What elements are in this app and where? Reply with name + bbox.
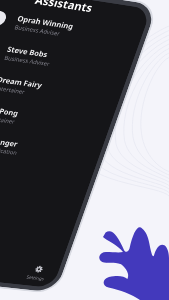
staticText: Settings xyxy=(26,274,45,281)
staticText: Business Adviser xyxy=(14,23,61,37)
staticText: Oprah Winning xyxy=(16,13,76,31)
button[interactable]: Settings xyxy=(21,262,53,283)
button[interactable]: Dream Fairy xyxy=(0,60,125,114)
staticText: Business Adviser xyxy=(4,53,51,67)
button[interactable]: Steve Bobs xyxy=(0,30,135,84)
staticText: Assistants xyxy=(33,0,95,15)
button[interactable]: Mr Pong xyxy=(0,91,115,143)
staticText: Entertainer xyxy=(0,114,16,125)
button[interactable]: Jones xyxy=(0,151,94,200)
staticText: Mr Pong xyxy=(0,104,20,118)
staticText: Communication xyxy=(0,143,19,156)
button[interactable]: Ted Mosby xyxy=(0,209,74,257)
staticText: Entertainer xyxy=(0,84,26,95)
staticText: Steve Bobs xyxy=(6,43,50,59)
staticText: Messenger xyxy=(0,134,19,148)
button[interactable]: Messenger xyxy=(0,121,104,172)
button[interactable]: Sarah Hope xyxy=(0,180,84,229)
button[interactable]: Oprah Winning xyxy=(0,0,146,54)
staticText: Dream Fairy xyxy=(0,74,44,90)
